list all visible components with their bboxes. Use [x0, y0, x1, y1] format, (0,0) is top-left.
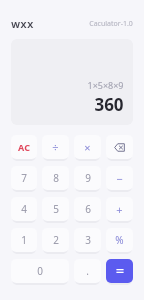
staticText: AC — [18, 141, 30, 153]
button[interactable]: Equals — [106, 259, 133, 283]
staticText: WXX — [11, 18, 34, 30]
button[interactable]: 7 — [11, 166, 37, 190]
staticText: × — [84, 140, 91, 155]
button[interactable]: 9 — [74, 166, 101, 190]
button[interactable]: 3 — [74, 228, 101, 252]
staticText: 2 — [53, 233, 59, 247]
staticText: 0 — [37, 264, 43, 278]
button[interactable]: AC — [11, 135, 37, 159]
staticText: 360 — [94, 93, 124, 116]
staticText: 1 — [21, 233, 27, 247]
button[interactable]: × — [74, 135, 101, 159]
button[interactable]: 2 — [42, 228, 69, 252]
button[interactable]: + — [106, 197, 133, 221]
staticText: 8 — [53, 171, 59, 185]
button[interactable]: . — [74, 259, 101, 283]
staticText: 7 — [21, 171, 27, 185]
button[interactable]: 0 — [11, 259, 69, 283]
staticText: % — [115, 233, 124, 247]
button[interactable]: 1 — [11, 228, 37, 252]
staticText: + — [116, 202, 123, 217]
staticText: . — [86, 264, 89, 278]
staticText: 9 — [85, 171, 91, 185]
staticText: Caculator-1.0 — [89, 19, 133, 29]
staticText: − — [116, 171, 123, 186]
button[interactable]: 4 — [11, 197, 37, 221]
button[interactable]: 6 — [74, 197, 101, 221]
staticText: 4 — [21, 202, 27, 216]
staticText: 6 — [85, 202, 91, 216]
staticText: 3 — [85, 233, 91, 247]
staticText: 5 — [53, 202, 59, 216]
button[interactable]: ÷ — [42, 135, 69, 159]
button[interactable]: 5 — [42, 197, 69, 221]
button[interactable]: 8 — [42, 166, 69, 190]
button[interactable]: − — [106, 166, 133, 190]
staticText: ÷ — [52, 140, 59, 155]
button[interactable]: Backspace — [106, 135, 133, 159]
button[interactable]: % — [106, 228, 133, 252]
staticText: 1×5×8×9 — [87, 79, 124, 91]
